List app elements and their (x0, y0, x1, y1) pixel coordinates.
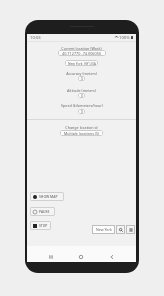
button[interactable]: Multiple locations (5) (60, 130, 103, 136)
staticText: 100% (119, 35, 130, 41)
button[interactable]: New York (92, 225, 115, 234)
staticText: Change location id (65, 125, 98, 130)
staticText: Speed (kilometers/hour) (61, 103, 103, 108)
staticText: 10:03 (30, 35, 41, 41)
staticText: STOP (39, 223, 48, 228)
button[interactable]: STOP (30, 221, 51, 230)
button[interactable]: Back (106, 251, 118, 263)
button[interactable]: 0 (78, 109, 85, 114)
staticText: Altitude (meters) (67, 88, 96, 93)
button[interactable]: 40.712770,-74.006050 (58, 50, 106, 56)
button[interactable]: 0 (78, 93, 85, 98)
staticText: PAUSE (39, 209, 50, 214)
staticText: SHOW MAP (39, 194, 58, 199)
staticText: Accuracy (meters) (66, 71, 97, 76)
button[interactable]: SHOW MAP (30, 192, 64, 201)
button[interactable]: Home (75, 251, 87, 263)
staticText: Multiple locations (5) (64, 131, 100, 136)
staticText: New York (96, 227, 112, 232)
staticText: Current location (Work) (61, 46, 102, 51)
button[interactable]: Options (126, 225, 135, 234)
button[interactable]: 0 (78, 76, 85, 81)
button[interactable]: PAUSE (30, 207, 55, 216)
button[interactable]: Search (116, 225, 125, 234)
button[interactable]: Recents (45, 251, 57, 263)
staticText: New York, NY USA (68, 61, 96, 65)
button[interactable]: New York, NY USA (65, 60, 98, 66)
staticText: 40.712770,-74.006050 (62, 51, 102, 56)
